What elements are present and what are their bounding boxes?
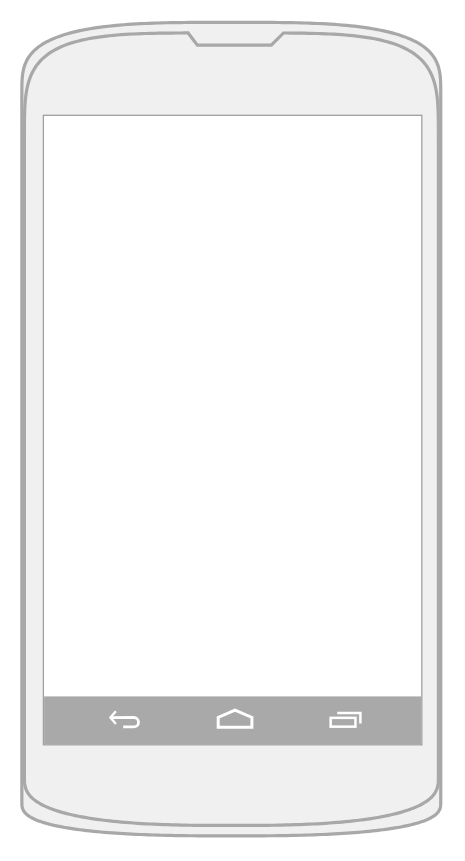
button[interactable]: Back (60, 696, 186, 744)
button[interactable]: Recent apps (297, 696, 423, 744)
button[interactable]: Home (172, 696, 298, 744)
